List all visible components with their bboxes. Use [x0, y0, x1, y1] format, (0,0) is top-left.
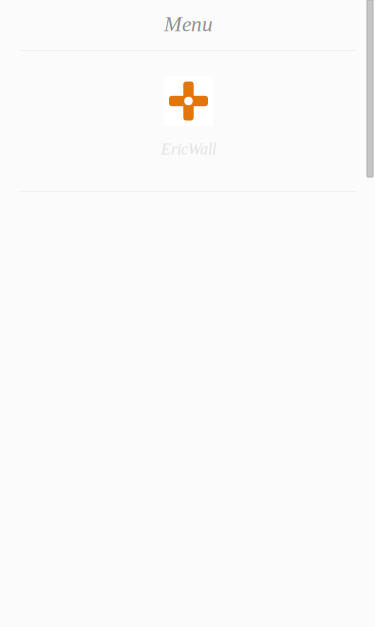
staticText: EricWall: [161, 140, 216, 158]
staticText: Menu: [164, 12, 213, 36]
button[interactable]: EricWall: [1, 76, 375, 158]
